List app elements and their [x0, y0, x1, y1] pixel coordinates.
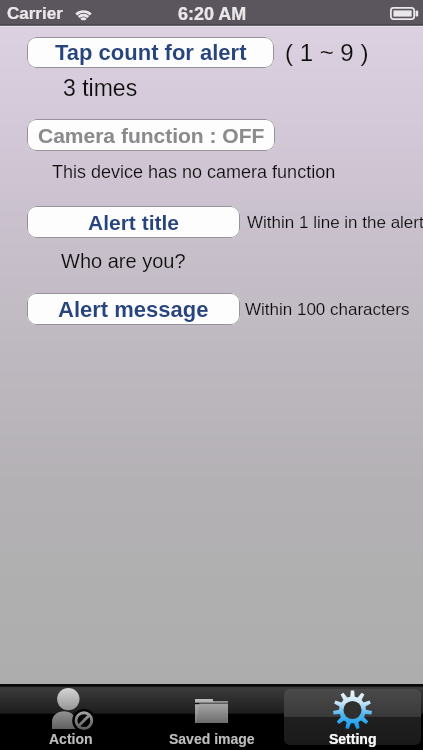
staticText: Carrier	[7, 4, 63, 23]
button[interactable]: Camera function : OFF	[27, 119, 275, 151]
button[interactable]: Action	[0, 684, 141, 750]
other: Wi-Fi signal	[72, 5, 95, 22]
button[interactable]: Alert title	[27, 206, 240, 238]
staticText: Setting	[329, 731, 377, 747]
staticText: Saved image	[169, 731, 255, 747]
staticText: ( 1 ~ 9 )	[285, 39, 369, 66]
staticText: Tap count for alert	[55, 40, 247, 65]
button[interactable]: Alert message	[27, 293, 240, 325]
staticText: Alert message	[58, 297, 209, 322]
staticText: Who are you?	[61, 250, 186, 272]
staticText: This device has no camera function	[52, 162, 336, 182]
button[interactable]: Setting	[282, 684, 423, 750]
staticText: Within 1 line in the alert	[247, 213, 423, 232]
staticText: Camera function : OFF	[38, 124, 265, 147]
staticText: 3 times	[63, 75, 138, 101]
button[interactable]: Saved image	[141, 684, 282, 750]
other: Battery	[390, 7, 418, 20]
staticText: 6:20 AM	[178, 4, 247, 24]
staticText: Within 100 characters	[245, 300, 410, 319]
button[interactable]: Tap count for alert	[27, 37, 274, 68]
staticText: Alert title	[88, 211, 180, 234]
staticText: Action	[49, 731, 93, 747]
